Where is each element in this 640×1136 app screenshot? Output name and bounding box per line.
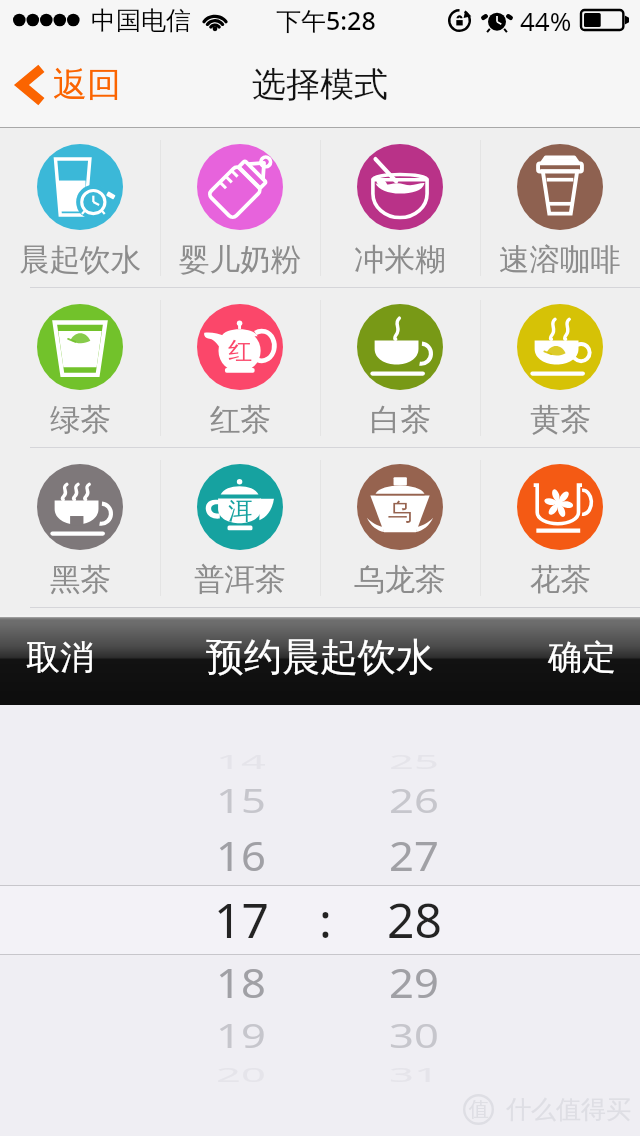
staticText: 20: [216, 1061, 266, 1088]
staticText: 值: [469, 1097, 489, 1122]
button[interactable]: 冲米糊: [320, 128, 480, 287]
button[interactable]: 乌: [320, 448, 480, 607]
staticText: 14: [216, 748, 266, 775]
staticText: 25: [389, 748, 439, 775]
staticText: 婴儿奶粉: [179, 241, 301, 279]
staticText: 16: [216, 827, 266, 882]
button[interactable]: 速溶咖啡: [480, 128, 640, 287]
staticText: 44%: [520, 3, 572, 38]
staticText: 白茶: [370, 401, 431, 439]
button[interactable]: 白茶: [320, 288, 480, 447]
staticText: 红: [228, 336, 252, 366]
staticText: 速溶咖啡: [499, 241, 621, 279]
staticText: 乌龙茶: [354, 561, 446, 599]
staticText: 26: [389, 778, 439, 822]
staticText: 取消: [26, 636, 94, 679]
button[interactable]: 绿茶: [0, 288, 160, 447]
button[interactable]: 红: [160, 288, 320, 447]
staticText: 花茶: [530, 561, 591, 599]
staticText: 17: [214, 887, 269, 949]
staticText: 27: [389, 827, 439, 882]
staticText: 什么值得买: [506, 1094, 631, 1125]
staticText: 中国电信: [91, 5, 191, 36]
staticText: 黄茶: [530, 401, 591, 439]
button[interactable]: 确定: [532, 629, 640, 692]
staticText: 选择模式: [252, 63, 388, 106]
staticText: 30: [389, 1013, 439, 1057]
staticText: 洱: [228, 496, 252, 526]
staticText: :: [319, 887, 332, 949]
staticText: 预约晨起饮水: [206, 633, 434, 681]
staticText: 晨起饮水: [19, 241, 141, 279]
button[interactable]: 黄茶: [480, 288, 640, 447]
staticText: 28: [387, 887, 442, 949]
staticText: 冲米糊: [354, 241, 446, 279]
button[interactable]: 洱: [160, 448, 320, 607]
button[interactable]: 黑茶: [0, 448, 160, 607]
staticText: 红茶: [210, 401, 271, 439]
staticText: 15: [216, 778, 266, 822]
button[interactable]: 婴儿奶粉: [160, 128, 320, 287]
staticText: 绿茶: [50, 401, 111, 439]
staticText: 确定: [548, 636, 616, 679]
staticText: 普洱茶: [194, 561, 286, 599]
button[interactable]: 返回: [0, 55, 135, 114]
staticText: 31: [389, 1061, 439, 1088]
staticText: 19: [216, 1013, 266, 1057]
button[interactable]: 晨起饮水: [0, 128, 160, 287]
staticText: 乌: [388, 497, 412, 527]
button[interactable]: 花茶: [480, 448, 640, 607]
staticText: 29: [389, 954, 439, 1009]
staticText: 黑茶: [50, 561, 111, 599]
staticText: 返回: [53, 63, 121, 106]
button[interactable]: 取消: [0, 629, 110, 692]
staticText: 下午5:28: [276, 3, 376, 37]
staticText: 18: [216, 954, 266, 1009]
